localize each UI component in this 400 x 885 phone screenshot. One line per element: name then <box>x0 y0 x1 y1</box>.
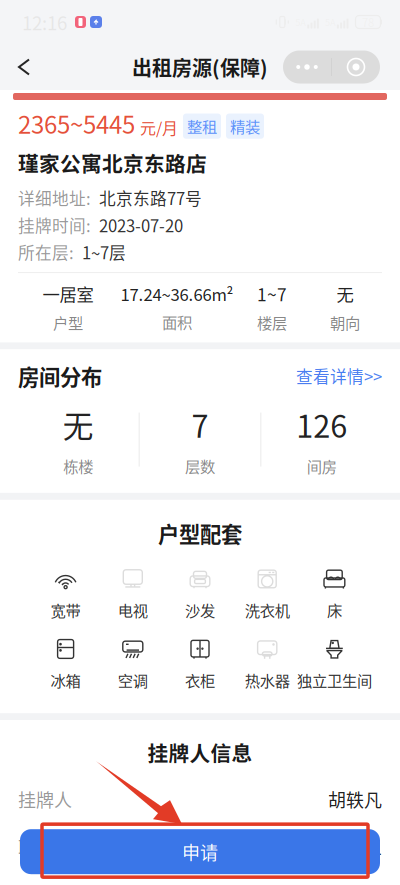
staticText: 北京东路77号 <box>99 186 202 210</box>
button[interactable]: 申请 <box>20 829 380 874</box>
staticText: 热水器 <box>245 669 290 691</box>
staticText: 楼层 <box>257 311 287 333</box>
staticText: 无 <box>63 402 94 447</box>
staticText: 栋楼 <box>63 455 93 477</box>
button[interactable]: 查看详情>> <box>296 364 382 388</box>
staticText: 朝向 <box>330 311 360 333</box>
staticText: 宽带 <box>51 599 81 621</box>
button[interactable]: 冰箱 <box>33 637 99 691</box>
staticText: 1~7 <box>257 281 287 306</box>
button[interactable]: 衣柜 <box>167 637 233 691</box>
staticText: 12:16 <box>22 8 67 35</box>
staticText: 查看详情>> <box>296 364 382 388</box>
staticText: 沙发 <box>185 599 215 621</box>
button[interactable]: Back <box>0 46 44 87</box>
staticText: 出租房源(保障) <box>132 52 268 81</box>
staticText: 所在层: <box>18 240 74 264</box>
button[interactable]: 空调 <box>100 637 166 691</box>
staticText: 2365~5445 <box>18 106 135 141</box>
button[interactable]: 沙发 <box>167 567 233 621</box>
staticText: 整租 <box>187 115 217 137</box>
staticText: 户型 <box>53 311 83 333</box>
staticText: 独立卫生间 <box>297 669 372 691</box>
staticText: 详细地址: <box>18 186 91 210</box>
staticText: 7 <box>191 402 208 447</box>
button[interactable]: 电视 <box>100 567 166 621</box>
staticText: 间房 <box>307 455 337 477</box>
staticText: 房间分布 <box>18 360 102 391</box>
staticText: 冰箱 <box>51 669 81 691</box>
staticText: 联系方式 <box>18 834 90 860</box>
staticText: 空调 <box>118 669 148 691</box>
staticText: 17312141221 <box>272 834 382 860</box>
staticText: 胡轶凡 <box>328 786 382 812</box>
staticText: 78 <box>362 14 374 30</box>
staticText: 元/月 <box>140 116 178 139</box>
staticText: 无 <box>336 281 353 306</box>
staticText: 面积 <box>162 311 192 333</box>
button[interactable]: Close <box>332 50 380 83</box>
staticText: 17.24~36.66m² <box>120 282 233 306</box>
staticText: 精装 <box>230 115 260 137</box>
staticText: 1~7层 <box>82 240 126 264</box>
staticText: 挂牌人 <box>18 786 72 812</box>
staticText: 层数 <box>185 455 215 477</box>
button[interactable]: 热水器 <box>234 637 300 691</box>
staticText: 户型配套 <box>158 518 242 549</box>
staticText: 电视 <box>118 599 148 621</box>
staticText: 一居室 <box>42 281 93 306</box>
staticText: 瑾家公寓北京东路店 <box>18 148 207 178</box>
staticText: 衣柜 <box>185 669 215 691</box>
staticText: 挂牌人信息 <box>147 737 252 767</box>
button[interactable]: 洗衣机 <box>234 567 300 621</box>
button[interactable]: 宽带 <box>33 567 99 621</box>
button[interactable]: More <box>283 50 331 83</box>
staticText: 挂牌时间: <box>18 213 91 237</box>
staticText: 床 <box>327 599 342 621</box>
button[interactable]: 床 <box>301 567 367 621</box>
button[interactable]: 独立卫生间 <box>301 637 367 691</box>
staticText: 洗衣机 <box>245 599 290 621</box>
staticText: 126 <box>296 402 347 447</box>
staticText: 申请 <box>182 839 218 865</box>
staticText: 2023-07-20 <box>99 213 183 237</box>
